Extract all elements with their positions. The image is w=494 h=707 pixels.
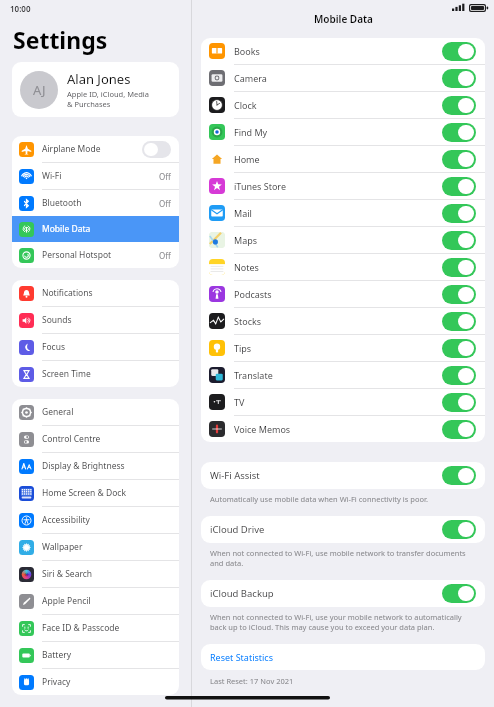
button[interactable]: Home [201, 146, 485, 172]
staticText: Display & Brightness [42, 460, 171, 472]
staticText: Wi-Fi [42, 170, 159, 182]
button[interactable]: Translate [201, 362, 485, 388]
button[interactable]: Stocks [201, 308, 485, 334]
staticText: Airplane Mode [42, 143, 142, 155]
button[interactable]: Toggle [442, 69, 476, 88]
staticText: Tips [234, 342, 442, 354]
staticText: Podcasts [234, 288, 442, 300]
button[interactable]: iTunes Store [201, 173, 485, 199]
button[interactable]: Tips [201, 335, 485, 361]
staticText: Clock [234, 99, 442, 111]
button[interactable]: Control Centre [12, 426, 179, 452]
button[interactable]: Home Screen & Dock [12, 480, 179, 506]
button[interactable]: Maps [201, 227, 485, 253]
button[interactable]: iCloud Drive [201, 516, 485, 543]
staticText: Control Centre [42, 433, 171, 445]
button[interactable]: Books [201, 38, 485, 64]
button[interactable]: Reset Statistics [201, 644, 485, 670]
button[interactable]: Airplane Mode [12, 136, 179, 162]
button[interactable]: Bluetooth [12, 190, 179, 216]
button[interactable]: Face ID & Passcode [12, 615, 179, 641]
staticText: Notifications [42, 287, 171, 299]
button[interactable]: Accessibility [12, 507, 179, 533]
button[interactable]: Wallpaper [12, 534, 179, 560]
staticText: Siri & Search [42, 568, 171, 580]
staticText: Reset Statistics [210, 651, 273, 663]
staticText: iCloud Backup [210, 587, 442, 600]
button[interactable]: Privacy [12, 669, 179, 695]
staticText: Maps [234, 234, 442, 246]
staticText: iCloud Drive [210, 523, 442, 536]
button[interactable]: Toggle [442, 584, 476, 603]
staticText: When not connected to Wi-Fi, use mobile … [210, 548, 478, 568]
staticText: Last Reset: 17 Nov 2021 [210, 676, 294, 686]
button[interactable]: Mobile Data [12, 216, 179, 242]
button[interactable]: Focus [12, 334, 179, 360]
staticText: Camera [234, 72, 442, 84]
button[interactable]: Toggle [442, 466, 476, 485]
staticText: Stocks [234, 315, 442, 327]
button[interactable]: TV [201, 389, 485, 415]
staticText: Mail [234, 207, 442, 219]
button[interactable]: Wi-Fi Assist [201, 462, 485, 489]
staticText: When not connected to Wi-Fi, use your mo… [210, 612, 478, 632]
button[interactable]: Podcasts [201, 281, 485, 307]
staticText: Apple ID, iCloud, Media & Purchases [67, 89, 149, 109]
button[interactable]: iCloud Backup [201, 580, 485, 607]
button[interactable]: Toggle [442, 258, 476, 277]
button[interactable]: Notes [201, 254, 485, 280]
button[interactable]: Toggle [442, 520, 476, 539]
staticText: Off [159, 250, 171, 261]
staticText: Apple Pencil [42, 595, 171, 607]
staticText: Books [234, 45, 442, 57]
staticText: Off [159, 171, 171, 182]
button[interactable]: Toggle [442, 96, 476, 115]
staticText: Personal Hotspot [42, 249, 159, 261]
button[interactable]: Wi-Fi [12, 163, 179, 189]
button[interactable]: Toggle [442, 42, 476, 61]
button[interactable]: Battery [12, 642, 179, 668]
staticText: TV [234, 396, 442, 408]
button[interactable]: Clock [201, 92, 485, 118]
staticText: Mobile Data [42, 223, 171, 235]
button[interactable]: Toggle [442, 285, 476, 304]
staticText: Settings [13, 24, 108, 55]
button[interactable]: Toggle [442, 366, 476, 385]
staticText: Wi-Fi Assist [210, 469, 442, 482]
button[interactable]: Screen Time [12, 361, 179, 387]
button[interactable]: Toggle [442, 312, 476, 331]
staticText: Off [159, 198, 171, 209]
staticText: iTunes Store [234, 180, 442, 192]
staticText: Home Screen & Dock [42, 487, 171, 499]
button[interactable]: Personal Hotspot [12, 242, 179, 268]
staticText: Find My [234, 126, 442, 138]
button[interactable]: Apple Pencil [12, 588, 179, 614]
staticText: Home [234, 153, 442, 165]
staticText: AJ [33, 81, 46, 99]
staticText: Face ID & Passcode [42, 622, 171, 634]
staticText: Sounds [42, 314, 171, 326]
button[interactable]: Display & Brightness [12, 453, 179, 479]
staticText: Voice Memos [234, 423, 442, 435]
button[interactable]: Notifications [12, 280, 179, 306]
staticText: Accessibility [42, 514, 171, 526]
button[interactable]: Toggle [442, 420, 476, 439]
button[interactable]: Siri & Search [12, 561, 179, 587]
button[interactable]: Toggle [442, 177, 476, 196]
staticText: Automatically use mobile data when Wi-Fi… [210, 494, 428, 504]
button[interactable]: AJ [12, 62, 179, 117]
button[interactable]: Camera [201, 65, 485, 91]
button[interactable]: Toggle [442, 231, 476, 250]
button[interactable]: Toggle [442, 123, 476, 142]
button[interactable]: Sounds [12, 307, 179, 333]
button[interactable]: Voice Memos [201, 416, 485, 442]
staticText: Alan Jones [67, 70, 131, 88]
button[interactable]: General [12, 399, 179, 425]
button[interactable]: Toggle [442, 339, 476, 358]
button[interactable]: Toggle [442, 393, 476, 412]
button[interactable]: Toggle [442, 204, 476, 223]
button[interactable]: Toggle [442, 150, 476, 169]
button[interactable]: Mail [201, 200, 485, 226]
button[interactable]: Find My [201, 119, 485, 145]
staticText: Privacy [42, 676, 171, 688]
